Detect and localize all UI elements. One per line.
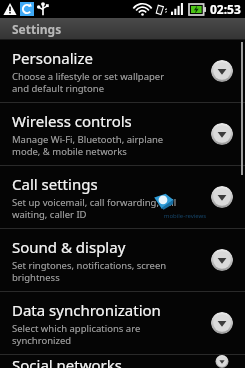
button[interactable]: Expand Call settings: [211, 186, 233, 208]
staticText: Settings: [12, 21, 62, 37]
button[interactable]: Expand Wireless controls: [211, 123, 233, 145]
button[interactable]: Wireless controls: [0, 103, 245, 165]
staticText: 02:53: [210, 1, 241, 17]
button[interactable]: Sound & display: [0, 229, 245, 291]
staticText: Choose a lifestyle or set wallpaper and …: [12, 70, 165, 95]
button[interactable]: Personalize: [0, 40, 245, 102]
staticText: Manage Wi-Fi, Bluetooth, airplane mode, …: [12, 133, 164, 158]
staticText: Select which applications are synchroniz…: [12, 322, 141, 347]
staticText: Data synchronization: [12, 300, 161, 320]
staticText: Sound & display: [12, 237, 126, 257]
button[interactable]: Expand Sound & display: [211, 249, 233, 271]
staticText: Set ringtones, notifications, screen bri…: [12, 259, 167, 284]
button[interactable]: Expand Social networks: [211, 355, 233, 368]
staticText: mobile-reviews: [147, 212, 223, 220]
staticText: Set up voicemail, call forwarding, call …: [12, 196, 177, 221]
staticText: Social networks: [12, 355, 122, 368]
button[interactable]: Call settings: [0, 166, 245, 228]
button[interactable]: Expand Data synchronization: [211, 312, 233, 334]
staticText: Wireless controls: [12, 111, 132, 131]
button[interactable]: Expand Personalize: [211, 60, 233, 82]
button[interactable]: Social networks: [0, 355, 245, 368]
staticText: Personalize: [12, 48, 93, 68]
button[interactable]: Data synchronization: [0, 292, 245, 354]
staticText: Call settings: [12, 174, 98, 194]
